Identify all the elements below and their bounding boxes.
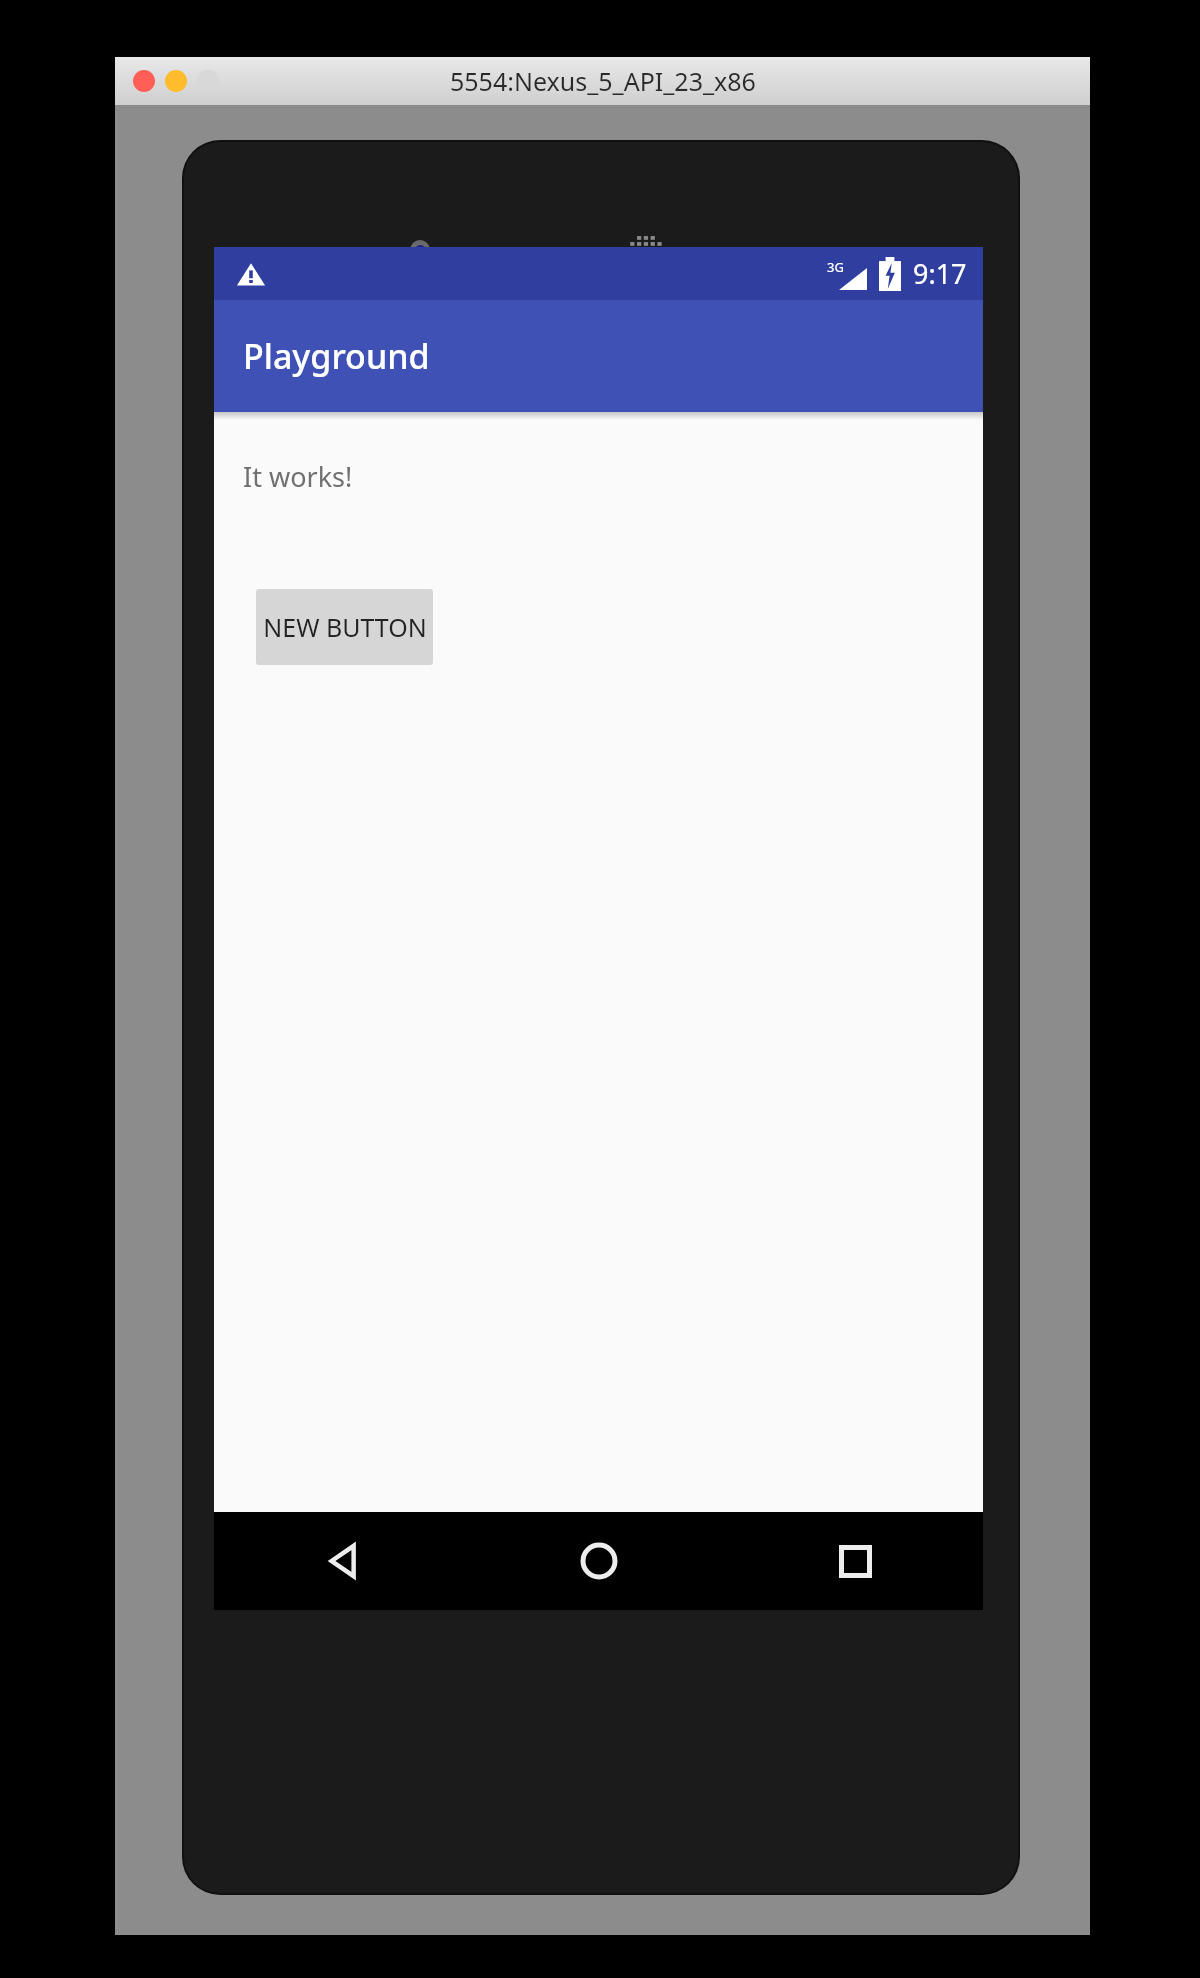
button[interactable]: Home — [471, 1512, 727, 1610]
staticText: Playground — [243, 333, 430, 379]
staticText: 3G — [827, 258, 844, 276]
staticText: It works! — [243, 458, 353, 495]
staticText: NEW BUTTON — [263, 610, 427, 644]
button[interactable]: NEW BUTTON — [256, 589, 433, 665]
button[interactable]: Minimize — [165, 70, 187, 92]
button[interactable]: Recent apps — [727, 1512, 983, 1610]
button[interactable]: Back — [214, 1512, 471, 1610]
staticText: 5554:Nexus_5_API_23_x86 — [450, 64, 756, 98]
button[interactable]: Close — [133, 70, 155, 92]
staticText: 9:17 — [913, 255, 967, 292]
